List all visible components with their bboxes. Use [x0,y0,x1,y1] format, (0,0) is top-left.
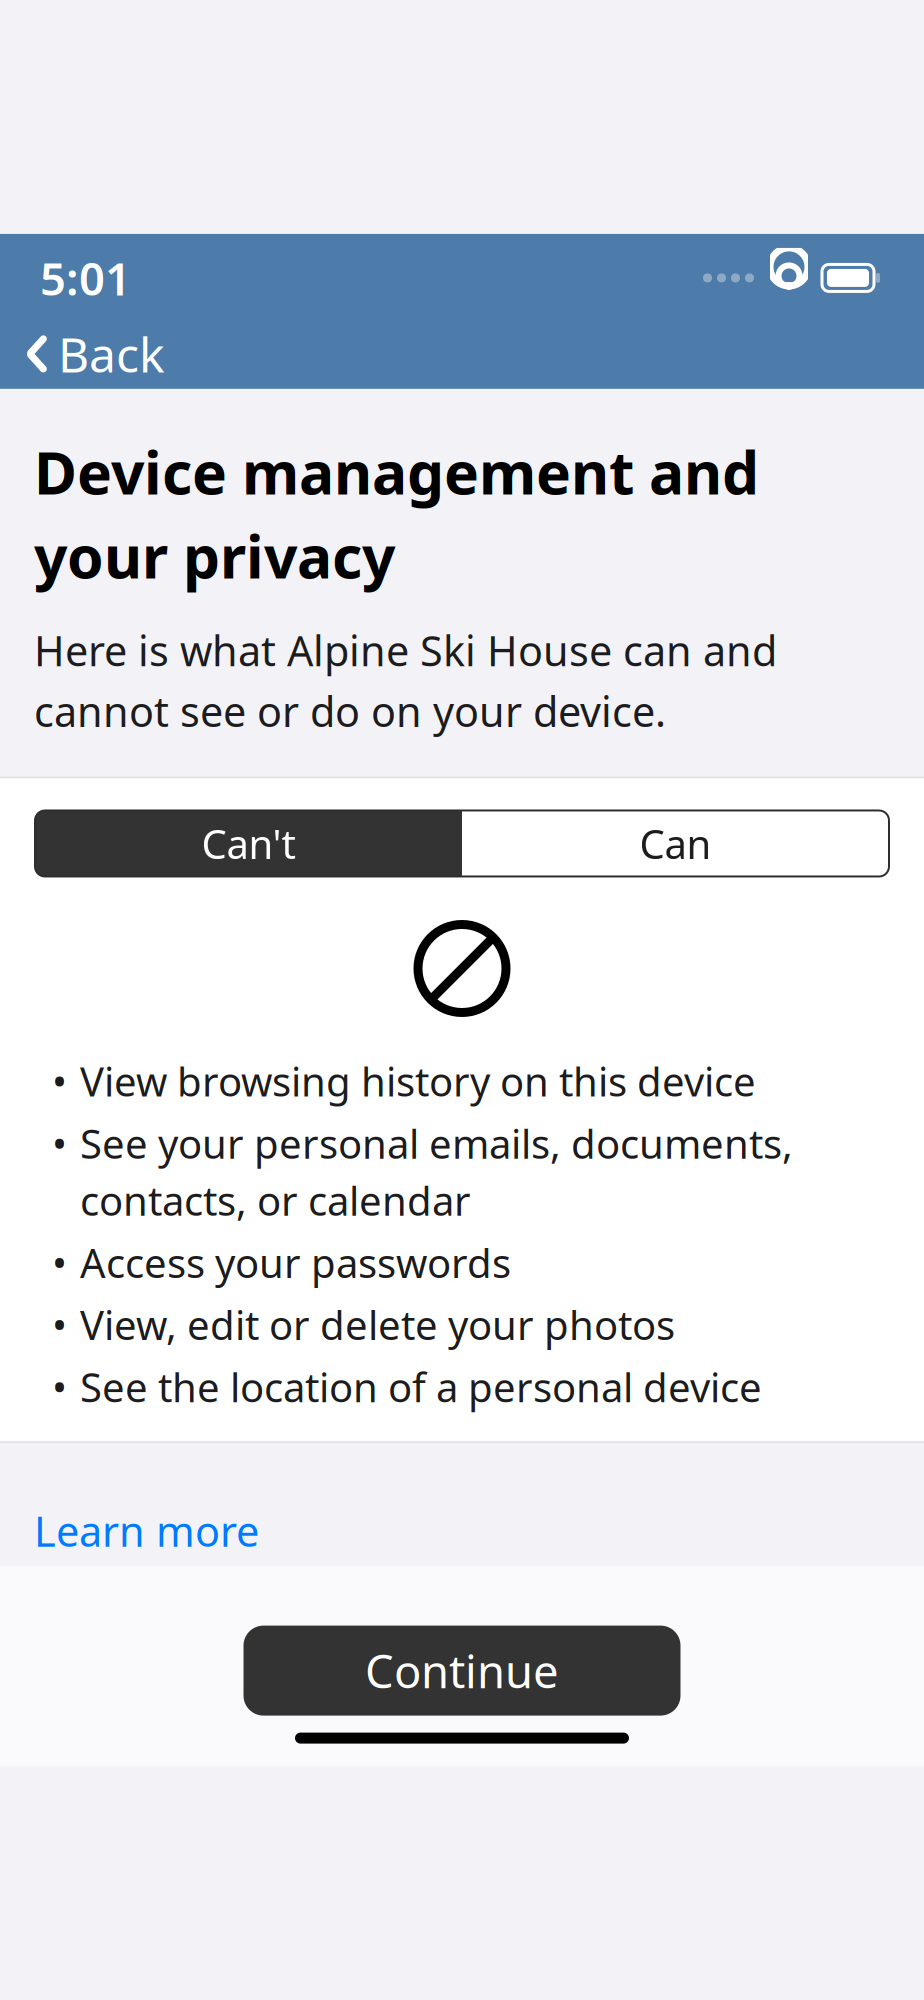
staticText: See your personal emails, documents, con… [80,1117,793,1227]
staticText: Continue [365,1640,559,1701]
staticText: your privacy [34,517,395,595]
staticText: View, edit or delete your photos [80,1298,675,1351]
staticText: Can't [201,817,295,870]
button[interactable]: Learn more [34,1495,259,1566]
staticText: Can [639,817,711,870]
staticText: Back [58,322,165,386]
button[interactable]: Continue [243,1626,680,1716]
staticText: Here is what Alpine Ski House can and ca… [34,623,777,738]
staticText: See the location of a personal device [80,1360,762,1413]
staticText: 5:01 [40,248,131,308]
staticText: Learn more [34,1503,259,1558]
button[interactable]: Back [0,322,924,386]
button[interactable]: Can [462,810,889,876]
staticText: Access your passwords [80,1236,511,1289]
staticText: • [52,1117,67,1170]
staticText: • [52,1298,67,1351]
staticText: • [52,1054,67,1108]
button[interactable]: Can't [35,810,462,876]
staticText: • [52,1236,67,1289]
staticText: • [52,1360,67,1413]
staticText: View browsing history on this device [80,1054,756,1108]
staticText: Device management and [34,433,759,511]
